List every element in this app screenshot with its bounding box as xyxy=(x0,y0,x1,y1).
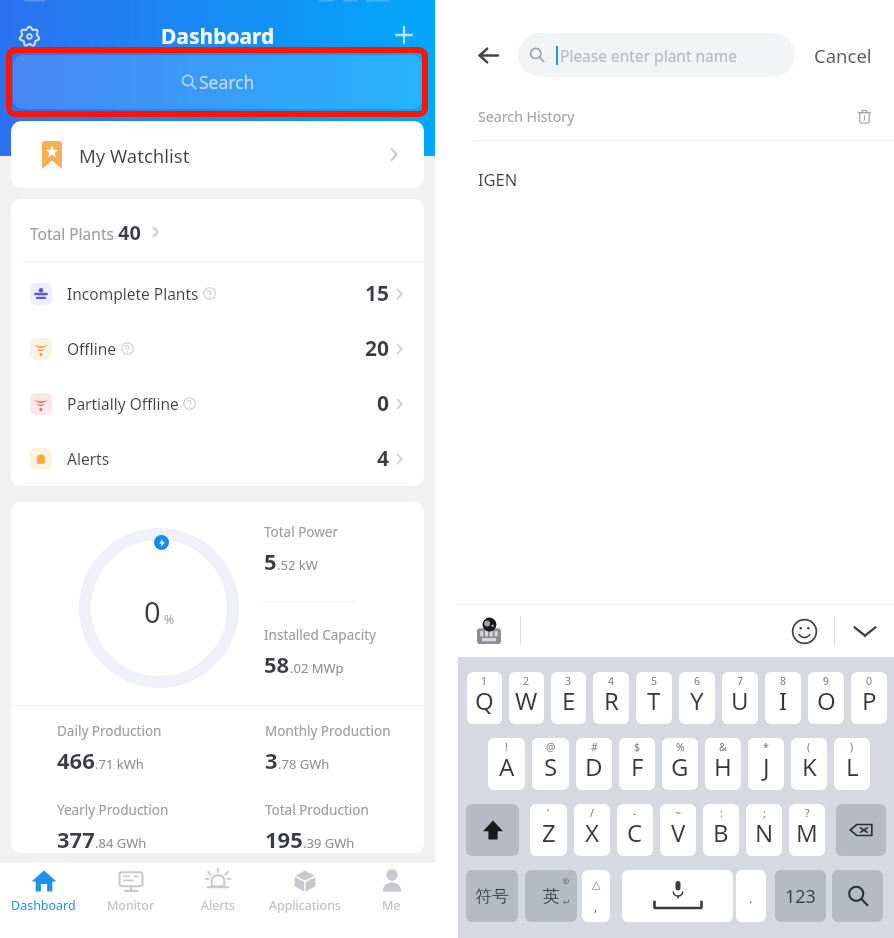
button[interactable]: IGEN xyxy=(478,168,518,190)
button[interactable]: : xyxy=(703,804,739,856)
staticText: Incomplete Plants xyxy=(67,283,199,304)
button[interactable]: ? xyxy=(789,804,825,856)
button[interactable]: Offline xyxy=(11,321,424,376)
staticText: 377 xyxy=(57,824,95,853)
button[interactable]: Clear search history xyxy=(852,104,876,128)
staticText: D xyxy=(585,750,603,783)
button[interactable]: Monitor xyxy=(87,862,174,938)
staticText: IGEN xyxy=(478,168,518,190)
staticText: E xyxy=(562,684,576,717)
button[interactable]: ) xyxy=(834,738,870,790)
button[interactable]: % xyxy=(662,738,698,790)
button[interactable]: 7 xyxy=(722,672,758,724)
staticText: # xyxy=(591,740,598,754)
staticText: 0 xyxy=(144,592,161,631)
button[interactable]: 6 xyxy=(679,672,715,724)
button[interactable]: 8 xyxy=(765,672,801,724)
button[interactable]: Back xyxy=(472,39,504,71)
staticText: .84 GWh xyxy=(95,834,147,852)
staticText: 466 xyxy=(57,745,95,775)
staticText: 8 xyxy=(780,674,787,688)
staticText: 0 xyxy=(866,674,873,688)
staticText: Search History xyxy=(478,107,575,126)
button[interactable]: ( xyxy=(791,738,827,790)
button[interactable]: Add plant xyxy=(389,20,419,50)
button[interactable]: Switch input method xyxy=(472,613,506,647)
button[interactable]: 9 xyxy=(808,672,844,724)
button[interactable]: & xyxy=(705,738,741,790)
button[interactable]: @ xyxy=(532,738,569,790)
staticText: Search xyxy=(199,70,255,94)
staticText: Alerts xyxy=(67,448,110,469)
button[interactable]: Hide keyboard xyxy=(850,616,880,646)
staticText: 英 xyxy=(543,886,560,907)
button[interactable]: Emoji xyxy=(789,616,819,646)
button[interactable]: Incomplete Plants xyxy=(11,266,424,321)
button[interactable]: # xyxy=(576,738,612,790)
button[interactable]: - xyxy=(617,804,653,856)
button[interactable]: 5 xyxy=(636,672,672,724)
button[interactable]: $ xyxy=(619,738,655,790)
button[interactable]: 符号 xyxy=(466,870,518,922)
button[interactable]: Shift xyxy=(466,804,519,856)
staticText: Applications xyxy=(269,897,341,914)
staticText: : xyxy=(720,806,723,820)
button[interactable]: 3 xyxy=(551,672,586,724)
staticText: Alerts xyxy=(201,897,235,914)
button[interactable]: ~ xyxy=(660,804,696,856)
staticText: Cancel xyxy=(814,43,872,68)
button[interactable]: Settings xyxy=(13,20,45,52)
button[interactable]: Alerts xyxy=(174,862,261,938)
staticText: 1 xyxy=(481,674,488,688)
staticText: L xyxy=(846,750,859,783)
button[interactable]: ' xyxy=(530,804,567,856)
staticText: Q xyxy=(475,684,494,717)
staticText: , xyxy=(594,897,598,915)
staticText: @ xyxy=(546,740,556,754)
staticText: Z xyxy=(542,816,556,849)
button[interactable]: △ xyxy=(582,870,610,922)
staticText: ! xyxy=(505,740,508,754)
staticText: I xyxy=(779,684,788,717)
button[interactable]: 英 xyxy=(525,870,577,922)
staticText: △ xyxy=(592,878,601,891)
staticText: 3 xyxy=(265,745,278,775)
button[interactable]: 0 xyxy=(851,672,887,724)
button[interactable]: * xyxy=(748,738,784,790)
staticText: R xyxy=(604,684,619,717)
button[interactable]: / xyxy=(574,804,610,856)
button[interactable]: 2 xyxy=(509,672,544,724)
staticText: 7 xyxy=(737,674,744,688)
button[interactable]: ! xyxy=(488,738,525,790)
staticText: ' xyxy=(547,806,550,820)
staticText: P xyxy=(862,684,877,717)
staticText: .71 kWh xyxy=(95,755,144,773)
staticText: Monthly Production xyxy=(265,722,391,740)
button[interactable]: Total Plants xyxy=(11,199,424,261)
button[interactable]: Delete xyxy=(836,804,886,856)
button[interactable]: 1 xyxy=(467,672,502,724)
button[interactable]: Space xyxy=(622,870,733,922)
button[interactable]: Cancel xyxy=(809,36,877,74)
staticText: .02 MWp xyxy=(290,659,344,677)
button[interactable]: . xyxy=(736,870,766,922)
button[interactable]: Me xyxy=(348,862,435,938)
button[interactable]: Applications xyxy=(261,862,348,938)
button[interactable]: Partially Offline xyxy=(11,376,424,431)
staticText: Me xyxy=(382,897,401,914)
button[interactable]: ; xyxy=(746,804,782,856)
staticText: 4 xyxy=(377,444,390,473)
staticText: G xyxy=(671,750,689,783)
button[interactable]: Search xyxy=(832,870,883,922)
button[interactable]: Alerts xyxy=(11,431,424,486)
staticText: % xyxy=(676,740,685,754)
button[interactable]: 123 xyxy=(775,870,826,922)
staticText: V xyxy=(671,816,686,849)
button[interactable]: Search xyxy=(13,55,422,109)
staticText: U xyxy=(731,684,749,717)
button[interactable]: Please enter plant name xyxy=(518,33,795,77)
button[interactable]: 4 xyxy=(593,672,629,724)
button[interactable]: My Watchlist xyxy=(11,121,424,188)
button[interactable]: Dashboard xyxy=(0,862,87,938)
staticText: ↵ xyxy=(563,897,571,907)
